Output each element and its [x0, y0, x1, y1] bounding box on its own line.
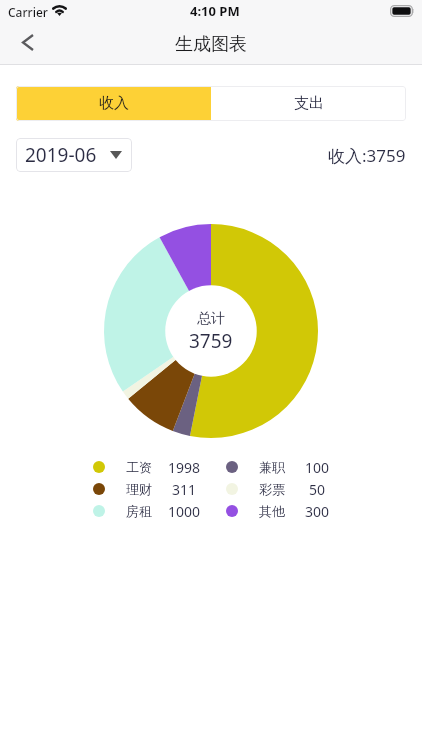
staticText: 300	[285, 502, 349, 521]
staticText: 收入:3759	[328, 144, 406, 167]
staticText: 1000	[152, 502, 216, 521]
staticText: 工资	[126, 459, 152, 475]
staticText: Carrier	[8, 4, 48, 20]
button[interactable]: 2019-06	[16, 138, 132, 172]
staticText: 生成图表	[175, 33, 247, 56]
staticText: 50	[285, 480, 349, 499]
staticText: 1998	[152, 458, 216, 477]
staticText: 支出	[294, 94, 324, 113]
staticText: 100	[285, 458, 349, 477]
staticText: 3759	[189, 328, 233, 354]
staticText: 总计	[197, 310, 225, 328]
staticText: 收入	[99, 94, 129, 113]
staticText: 兼职	[259, 459, 285, 475]
staticText: 2019-06	[25, 142, 97, 168]
staticText: 理财	[126, 481, 152, 497]
staticText: 彩票	[259, 481, 285, 497]
button[interactable]: Back	[0, 24, 47, 65]
staticText: 房租	[126, 503, 152, 519]
staticText: 其他	[259, 503, 285, 519]
staticText: 311	[152, 480, 216, 499]
button[interactable]: 收入	[16, 86, 211, 121]
staticText: 4:10 PM	[190, 2, 240, 20]
button[interactable]: 支出	[211, 86, 406, 121]
